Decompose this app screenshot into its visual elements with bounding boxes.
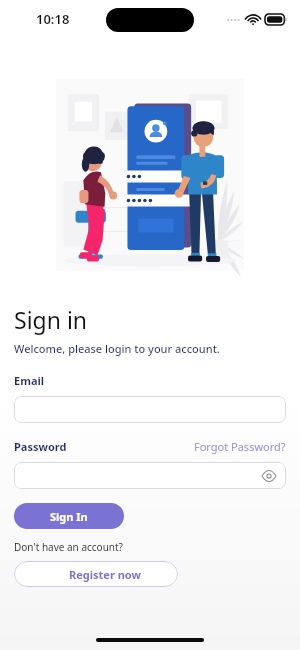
- button[interactable]: [14, 396, 286, 423]
- staticText: Don't have an account?: [14, 540, 123, 554]
- staticText: Register now: [69, 567, 141, 582]
- button[interactable]: Sign In: [14, 503, 124, 529]
- button[interactable]: Forgot Password?: [194, 439, 286, 454]
- staticText: Sign in: [14, 304, 88, 335]
- button[interactable]: Show password: [260, 467, 278, 485]
- staticText: Welcome, please login to your account.: [14, 341, 220, 356]
- button[interactable]: Register now: [14, 561, 178, 587]
- staticText: Email: [14, 373, 45, 388]
- button[interactable]: Show password: [14, 462, 286, 489]
- staticText: Forgot Password?: [194, 439, 286, 454]
- staticText: Sign In: [50, 509, 88, 524]
- staticText: Password: [14, 439, 67, 454]
- staticText: 10:18: [36, 10, 70, 28]
